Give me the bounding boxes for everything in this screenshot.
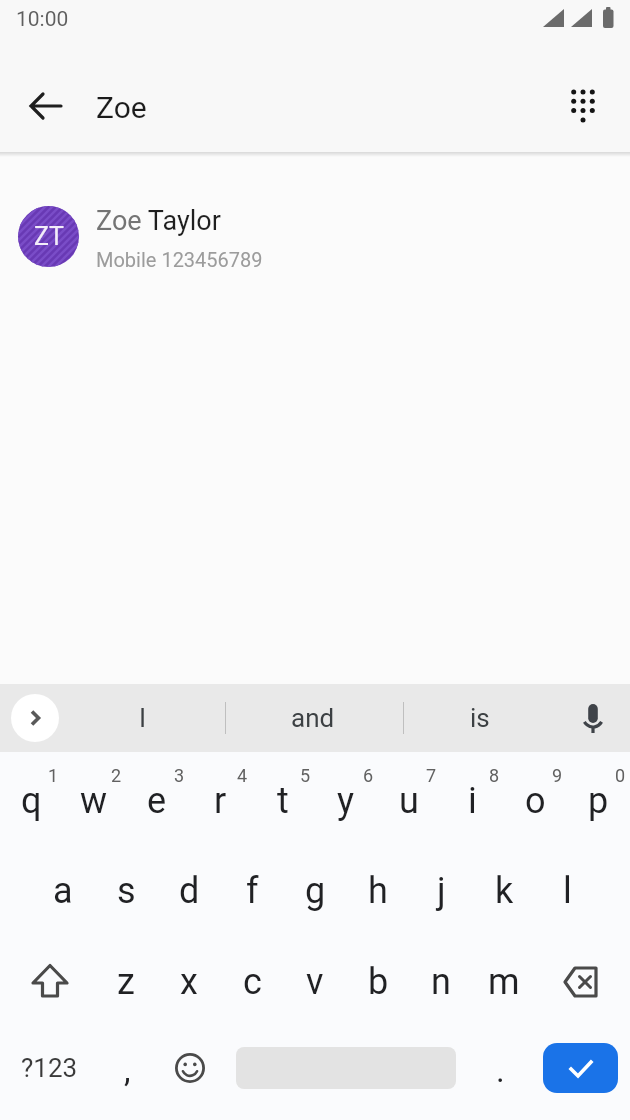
staticText: p <box>588 780 609 822</box>
button[interactable]: I <box>90 692 196 744</box>
button[interactable]: y <box>315 770 377 832</box>
staticText: I <box>139 703 147 733</box>
staticText: 9 <box>552 765 563 786</box>
staticText: s <box>117 870 136 912</box>
button[interactable] <box>166 1044 214 1092</box>
button[interactable] <box>569 694 617 742</box>
staticText: f <box>246 870 259 912</box>
button[interactable]: t <box>252 770 314 832</box>
button[interactable]: c <box>221 951 283 1013</box>
button[interactable]: q <box>0 770 62 832</box>
staticText: 1 <box>48 765 59 786</box>
button[interactable]: is <box>420 692 540 744</box>
staticText: c <box>243 961 262 1003</box>
staticText: is <box>470 703 490 733</box>
staticText: 5 <box>300 765 311 786</box>
button[interactable]: v <box>284 951 346 1013</box>
button[interactable]: z <box>95 951 157 1013</box>
button[interactable]: p <box>567 770 629 832</box>
staticText: m <box>488 961 520 1003</box>
button[interactable] <box>11 694 59 742</box>
staticText: q <box>21 780 42 822</box>
staticText: j <box>437 870 446 912</box>
staticText: u <box>399 780 419 822</box>
staticText: k <box>495 870 514 912</box>
staticText: a <box>53 870 73 912</box>
button[interactable]: e <box>126 770 188 832</box>
button[interactable] <box>551 957 613 1007</box>
staticText: , <box>124 1051 131 1090</box>
staticText: 3 <box>174 765 185 786</box>
button[interactable]: ?123 <box>14 1042 84 1094</box>
staticText: 6 <box>363 765 374 786</box>
staticText: e <box>147 780 167 822</box>
button[interactable]: d <box>158 860 220 922</box>
button[interactable]: l <box>536 860 598 922</box>
button[interactable]: f <box>221 860 283 922</box>
staticText: Zoe Taylor <box>96 205 221 237</box>
staticText: . <box>496 1051 505 1090</box>
staticText: t <box>277 780 289 822</box>
staticText: i <box>468 780 477 822</box>
button[interactable]: and <box>240 692 386 744</box>
button[interactable]: g <box>284 860 346 922</box>
button[interactable]: r <box>189 770 251 832</box>
staticText: l <box>563 870 572 912</box>
staticText: Mobile 123456789 <box>96 248 263 271</box>
button[interactable]: x <box>158 951 220 1013</box>
button[interactable]: m <box>473 951 535 1013</box>
button[interactable] <box>19 957 81 1007</box>
button[interactable]: ZT <box>0 192 630 282</box>
staticText: v <box>306 961 324 1003</box>
button[interactable]: o <box>504 770 566 832</box>
button[interactable] <box>22 82 70 130</box>
button[interactable]: h <box>347 860 409 922</box>
staticText: r <box>214 780 227 822</box>
staticText: g <box>305 870 326 912</box>
staticText: w <box>80 780 108 822</box>
staticText: h <box>368 870 388 912</box>
button[interactable]: b <box>347 951 409 1013</box>
button[interactable]: i <box>441 770 503 832</box>
staticText: o <box>525 780 546 822</box>
staticText: ?123 <box>21 1053 78 1083</box>
button[interactable]: k <box>473 860 535 922</box>
button[interactable] <box>559 81 607 129</box>
button[interactable]: n <box>410 951 472 1013</box>
staticText: 8 <box>489 765 500 786</box>
button[interactable]: a <box>32 860 94 922</box>
button[interactable]: s <box>95 860 157 922</box>
staticText: 0 <box>615 765 626 786</box>
staticText: ZT <box>34 222 64 251</box>
staticText: x <box>180 961 198 1003</box>
button[interactable]: w <box>63 770 125 832</box>
staticText: d <box>179 870 200 912</box>
staticText: z <box>117 961 135 1003</box>
staticText: y <box>337 780 355 822</box>
staticText: Zoe <box>96 90 147 125</box>
button[interactable]: u <box>378 770 440 832</box>
staticText: 2 <box>111 765 122 786</box>
staticText: b <box>368 961 389 1003</box>
staticText: 10:00 <box>16 7 69 32</box>
button[interactable]: j <box>410 860 472 922</box>
staticText: and <box>291 703 335 733</box>
staticText: 4 <box>237 765 248 786</box>
button[interactable]: , <box>100 1044 154 1096</box>
button[interactable]: . <box>473 1044 527 1096</box>
staticText: 7 <box>426 765 437 786</box>
button[interactable] <box>543 1043 618 1093</box>
staticText: n <box>431 961 451 1003</box>
